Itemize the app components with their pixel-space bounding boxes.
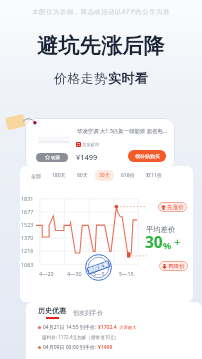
staticText: 1370: [21, 234, 34, 241]
button[interactable]: 30天: [95, 170, 114, 181]
button[interactable]: 先涨价: [158, 202, 187, 212]
staticText: 5—15: [119, 270, 134, 277]
staticText: ¥1499: [98, 344, 113, 351]
staticText: 4—20: [39, 270, 54, 277]
staticText: 60天: [77, 172, 88, 179]
staticText: 4—30: [67, 270, 82, 277]
staticText: 30天: [99, 172, 110, 179]
staticText: 领补贴购买: [135, 153, 160, 159]
staticText: 先涨价: [167, 204, 184, 211]
staticText: ¥1499: [76, 152, 98, 162]
staticText: 恒友到手价: [73, 309, 103, 317]
staticText: 180天: [52, 172, 66, 179]
button[interactable]: 领补贴购买: [128, 150, 166, 162]
staticText: 04月21日 14:55 到手价:: [43, 324, 98, 331]
staticText: 本图仅为示例，商品或活动以APP内公示为准: [0, 7, 202, 16]
button[interactable]: 618价: [117, 170, 139, 181]
staticText: 1831: [21, 195, 34, 202]
staticText: 04月09日 00:00 到手价:: [43, 344, 98, 351]
staticText: 京东超市: [82, 142, 100, 147]
button[interactable]: 全部: [27, 171, 45, 181]
button[interactable]: 收藏: [36, 153, 68, 162]
button[interactable]: 180天: [48, 170, 70, 181]
button[interactable]: 双11价: [142, 170, 166, 181]
staticText: 实时看: [108, 70, 148, 86]
staticText: 5—5: [93, 270, 105, 277]
staticText: %: [163, 239, 172, 251]
staticText: 华凌空调 大1.5匹新一级能效 超省电…: [77, 127, 168, 134]
staticText: 爆料价: 1172.4元包邮（赠拳道10元）: [42, 334, 120, 340]
button[interactable]: 60天: [73, 170, 92, 181]
staticText: 价格走势: [54, 70, 108, 86]
staticText: 30: [145, 231, 163, 252]
staticText: 1677: [21, 208, 34, 215]
staticText: ¥1702.4: [98, 324, 117, 331]
staticText: 1063: [21, 261, 34, 268]
staticText: 力度最大: [119, 325, 137, 331]
staticText: 1523: [21, 221, 34, 228]
button[interactable]: 再降价: [159, 261, 188, 271]
staticText: 双11价: [146, 172, 162, 179]
staticText: 避坑先涨后降: [37, 33, 165, 59]
staticText: 平均差价: [146, 225, 176, 234]
staticText: 收藏: [51, 155, 60, 161]
staticText: 再降价: [168, 263, 185, 270]
staticText: 1216: [21, 247, 34, 254]
button[interactable]: [25, 118, 175, 170]
staticText: 618价: [121, 172, 135, 179]
staticText: +: [174, 234, 181, 250]
staticText: 跟踪监测: [87, 261, 109, 274]
staticText: 历史优惠: [38, 306, 66, 315]
staticText: 全部: [31, 173, 41, 179]
